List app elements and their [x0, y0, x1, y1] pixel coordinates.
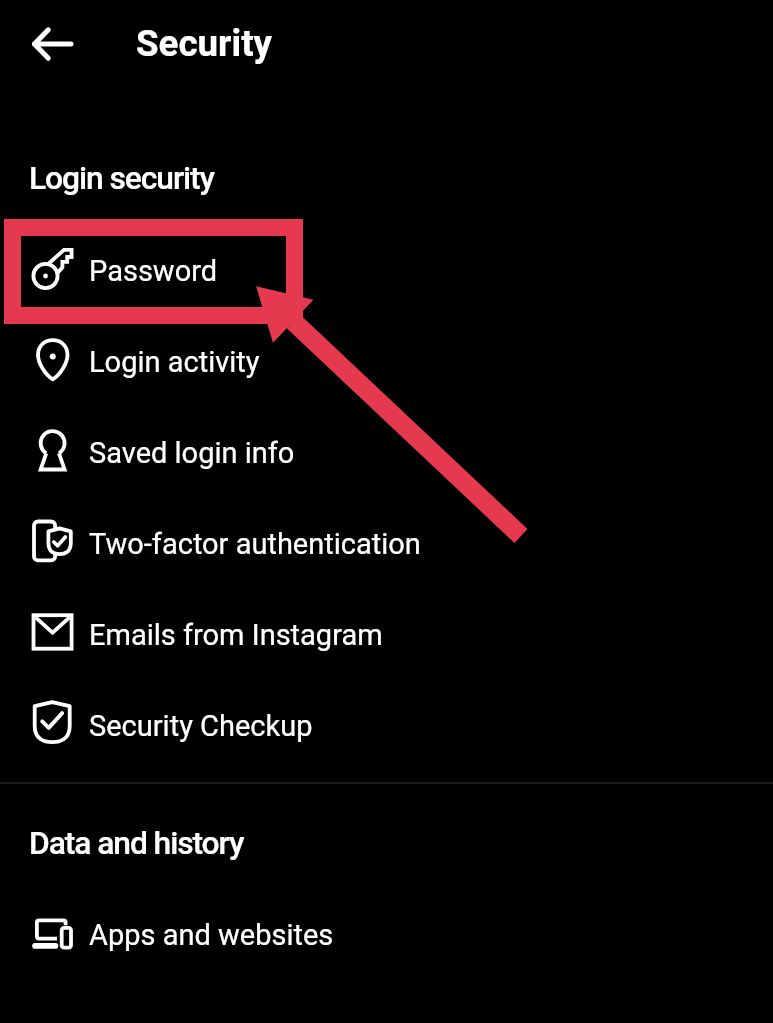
button[interactable]: Security Checkup: [0, 678, 773, 769]
staticText: Security Checkup: [89, 709, 313, 743]
staticText: Two-factor authentication: [89, 527, 421, 561]
staticText: Emails from Instagram: [89, 618, 383, 652]
staticText: Login activity: [89, 345, 260, 379]
button[interactable]: Login activity: [0, 314, 773, 405]
button[interactable]: Emails from Instagram: [0, 587, 773, 678]
staticText: Data and history: [29, 824, 244, 861]
staticText: Password: [89, 254, 218, 288]
button[interactable]: Back: [20, 17, 72, 69]
staticText: Security: [136, 22, 273, 65]
staticText: Login security: [29, 159, 214, 196]
button[interactable]: Saved login info: [0, 405, 773, 496]
staticText: Saved login info: [89, 436, 295, 470]
button[interactable]: Apps and websites: [0, 890, 773, 981]
staticText: Apps and websites: [89, 918, 334, 952]
button[interactable]: Two-factor authentication: [0, 496, 773, 587]
button[interactable]: Password: [0, 223, 773, 314]
